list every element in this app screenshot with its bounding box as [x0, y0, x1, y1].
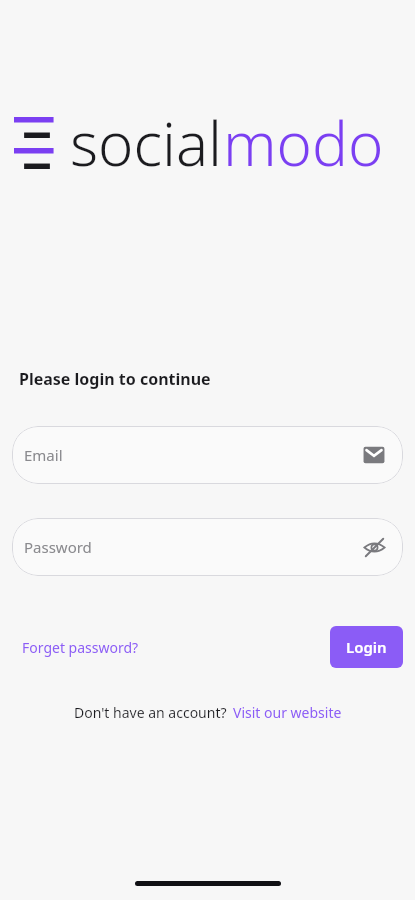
- button[interactable]: Email: [359, 440, 389, 470]
- button[interactable]: Visit our website: [233, 703, 342, 722]
- button[interactable]: Show password: [359, 532, 389, 562]
- staticText: social: [70, 102, 223, 184]
- button[interactable]: Login: [330, 626, 403, 668]
- button[interactable]: Email: [12, 426, 403, 484]
- staticText: Login: [346, 637, 387, 657]
- staticText: modo: [223, 102, 384, 184]
- staticText: Don't have an account?: [74, 703, 227, 722]
- staticText: Please login to continue: [19, 368, 211, 390]
- staticText: Email: [24, 445, 359, 465]
- staticText: Visit our website: [233, 703, 342, 722]
- button[interactable]: Password: [12, 518, 403, 576]
- staticText: Forget password?: [22, 638, 139, 657]
- staticText: Password: [24, 537, 359, 557]
- button[interactable]: Forget password?: [12, 632, 149, 663]
